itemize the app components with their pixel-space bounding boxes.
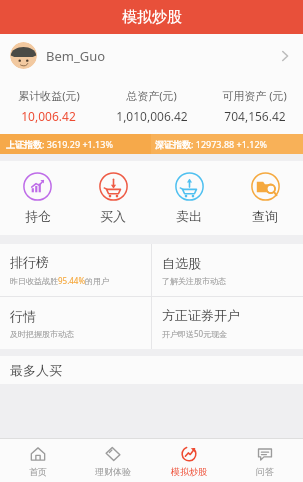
button[interactable]: 总资产(元) (97, 77, 206, 134)
staticText: 昨日收益战胜95.44%的用户 (10, 275, 110, 286)
staticText: 可用资产 (元) (222, 88, 287, 103)
button[interactable]: 累计收益(元) (0, 77, 97, 134)
staticText: 及时把握股市动态 (10, 329, 74, 339)
button[interactable]: 自选股 (152, 244, 303, 296)
staticText: 模拟炒股 (122, 8, 182, 27)
staticText: 方正证券开户 (162, 307, 240, 323)
staticText: 理财体验 (95, 466, 131, 477)
button[interactable]: 问答 (227, 439, 303, 482)
button[interactable]: 方正证券开户 (152, 297, 303, 349)
staticText: 持仓 (25, 208, 51, 224)
button[interactable]: 理财体验 (75, 439, 151, 482)
staticText: 自选股 (162, 255, 201, 271)
button[interactable]: Bem_Guo (0, 34, 303, 77)
staticText: 上证指数: 3619.29 +1.13% (6, 138, 113, 150)
staticText: 深证指数: 12973.88 +1.12% (155, 138, 268, 150)
button[interactable]: 可用资产 (元) (206, 77, 303, 134)
button[interactable]: 深证指数: 12973.88 +1.12% (151, 134, 303, 154)
button[interactable]: 排行榜 (0, 244, 151, 296)
staticText: 首页 (29, 466, 47, 477)
staticText: 704,156.42 (224, 108, 286, 124)
staticText: 总资产(元) (126, 88, 177, 103)
button[interactable]: 上证指数: 3619.29 +1.13% (0, 134, 151, 154)
button[interactable]: 模拟炒股 (151, 439, 227, 482)
staticText: 卖出 (176, 208, 202, 224)
staticText: 排行榜 (10, 254, 49, 270)
button[interactable]: 首页 (0, 439, 75, 482)
staticText: 最多人买 (10, 362, 62, 378)
staticText: 累计收益(元) (18, 88, 80, 103)
staticText: 问答 (256, 466, 274, 477)
button[interactable]: 持仓 (0, 161, 75, 235)
button[interactable]: 卖出 (151, 161, 227, 235)
staticText: 了解关注股市动态 (162, 276, 226, 286)
staticText: Bem_Guo (46, 47, 106, 65)
staticText: 查询 (252, 208, 278, 224)
button[interactable]: 最多人买 (0, 356, 303, 384)
staticText: 1,010,006.42 (116, 108, 188, 124)
staticText: 行情 (10, 308, 36, 324)
button[interactable]: 买入 (75, 161, 151, 235)
button[interactable]: 查询 (227, 161, 303, 235)
staticText: 买入 (100, 208, 126, 224)
staticText: 模拟炒股 (171, 466, 207, 477)
staticText: 10,006.42 (21, 108, 76, 124)
button[interactable]: 行情 (0, 297, 151, 349)
staticText: 开户即送50元现金 (162, 328, 228, 339)
other: Open profile (277, 48, 293, 64)
